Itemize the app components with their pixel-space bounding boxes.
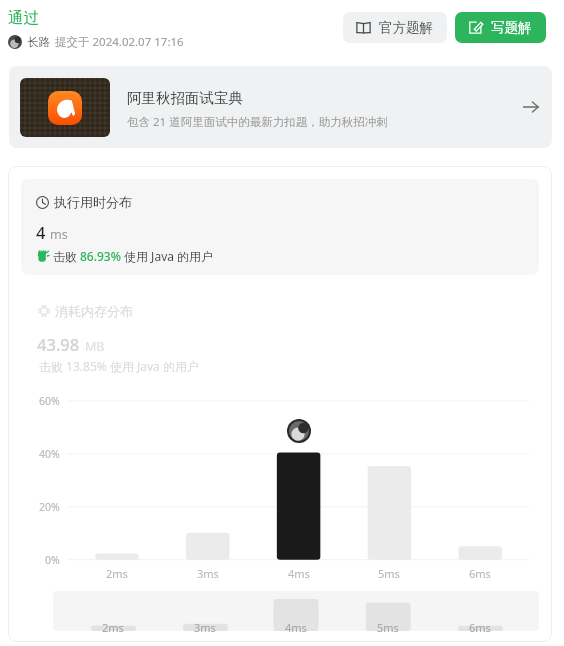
staticText: 4ms: [285, 620, 307, 635]
staticText: 0%: [45, 553, 60, 567]
staticText: ms: [50, 226, 68, 243]
staticText: 6ms: [469, 620, 491, 635]
other: Open: [522, 98, 540, 116]
staticText: 通过: [8, 8, 39, 28]
staticText: 长路: [27, 35, 50, 49]
staticText: 43.98: [37, 333, 80, 355]
staticText: MB: [85, 338, 105, 355]
staticText: 2ms: [106, 566, 128, 581]
staticText: 60%: [39, 394, 60, 408]
staticText: 86.93%: [80, 248, 121, 264]
staticText: 5ms: [378, 566, 400, 581]
button[interactable]: 官方题解: [343, 12, 447, 43]
staticText: 2ms: [102, 620, 124, 635]
staticText: 包含 21 道阿里面试中的最新力扣题，助力秋招冲刺: [127, 114, 388, 130]
staticText: 官方题解: [379, 19, 433, 36]
staticText: 3ms: [197, 566, 219, 581]
staticText: 4: [36, 221, 46, 243]
staticText: 提交于 2024.02.07 17:16: [55, 34, 184, 50]
staticText: 4ms: [288, 566, 310, 581]
staticText: 3ms: [194, 620, 216, 635]
staticText: 击败 13.85% 使用 Java 的用户: [39, 358, 199, 374]
staticText: 击败: [53, 249, 77, 264]
staticText: 6ms: [469, 566, 491, 581]
button[interactable]: 阿里秋招面试宝典: [9, 66, 552, 148]
staticText: 消耗内存分布: [55, 303, 133, 319]
staticText: 阿里秋招面试宝典: [127, 89, 243, 107]
staticText: 执行用时分布: [54, 194, 132, 210]
staticText: 5ms: [377, 620, 399, 635]
staticText: 20%: [39, 500, 60, 514]
staticText: 写题解: [491, 19, 532, 36]
staticText: 使用 Java 的用户: [124, 248, 214, 264]
staticText: 40%: [39, 447, 60, 461]
button[interactable]: 写题解: [455, 12, 546, 43]
